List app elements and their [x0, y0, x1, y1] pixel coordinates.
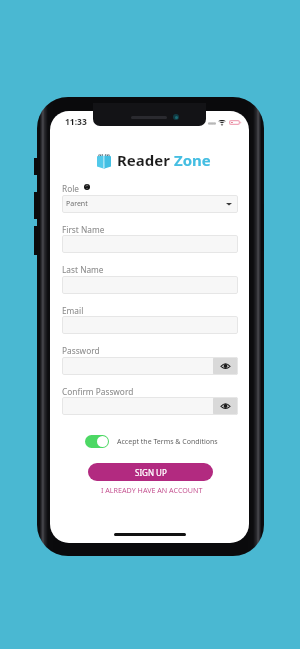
staticText: SIGN UP — [135, 467, 167, 478]
staticText: Role — [62, 183, 80, 194]
staticText: Accept the Terms & Conditions — [117, 437, 218, 447]
button[interactable]: Show password — [62, 357, 238, 375]
button[interactable]: I ALREADY HAVE AN ACCOUNT — [98, 484, 206, 495]
button[interactable]: SIGN UP — [88, 463, 213, 481]
staticText: Zone — [174, 150, 211, 170]
staticText: Last Name — [62, 264, 104, 275]
button[interactable]: Show password — [62, 397, 238, 415]
button[interactable]: Accept terms and conditions toggle — [85, 435, 109, 448]
staticText: Parent — [66, 199, 88, 209]
button[interactable]: Show password — [213, 357, 238, 375]
button[interactable] — [62, 235, 238, 253]
staticText: Password — [62, 345, 100, 356]
button[interactable] — [62, 276, 238, 294]
button[interactable]: Role selector — [62, 195, 238, 213]
staticText: I ALREADY HAVE AN ACCOUNT — [101, 485, 203, 495]
staticText: Email — [62, 305, 84, 316]
staticText: First Name — [62, 224, 105, 235]
button[interactable]: Show password — [213, 397, 238, 415]
staticText: 11:33 — [65, 116, 87, 128]
staticText: Reader — [117, 150, 174, 170]
button[interactable] — [62, 316, 238, 334]
staticText: Confirm Password — [62, 386, 134, 397]
button[interactable]: Role help — [84, 184, 90, 190]
